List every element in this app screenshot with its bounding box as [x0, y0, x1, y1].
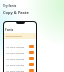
- button[interactable]: Aa Font Sample: [4, 55, 36, 61]
- staticText: Aa Font Sample: [6, 57, 25, 60]
- staticText: Try fonts: [3, 4, 17, 8]
- button[interactable]: Aa Font Sample: [4, 43, 36, 49]
- button[interactable]: Aa Font Sample: [4, 67, 36, 72]
- staticText: Enable keyboard: [6, 35, 22, 38]
- staticText: Aa Font Sample: [6, 45, 25, 48]
- button[interactable]: Copy font: [29, 63, 34, 66]
- button[interactable]: Copy font: [29, 45, 34, 48]
- button[interactable]: Aa Font Sample: [4, 49, 36, 55]
- staticText: Copy & Paste: [3, 10, 29, 15]
- staticText: Fonts: [5, 28, 14, 32]
- staticText: Aa Font Sample: [6, 51, 25, 54]
- button[interactable]: Copy font: [29, 51, 34, 54]
- button[interactable]: Aa Font Sample: [4, 61, 36, 67]
- button[interactable]: Copy font: [29, 69, 34, 72]
- staticText: Aa Font Sample: [6, 63, 25, 66]
- staticText: Aa Font Sample: [6, 69, 25, 72]
- button[interactable]: Copy font: [29, 57, 34, 60]
- button[interactable]: Enable keyboard: [4, 33, 36, 39]
